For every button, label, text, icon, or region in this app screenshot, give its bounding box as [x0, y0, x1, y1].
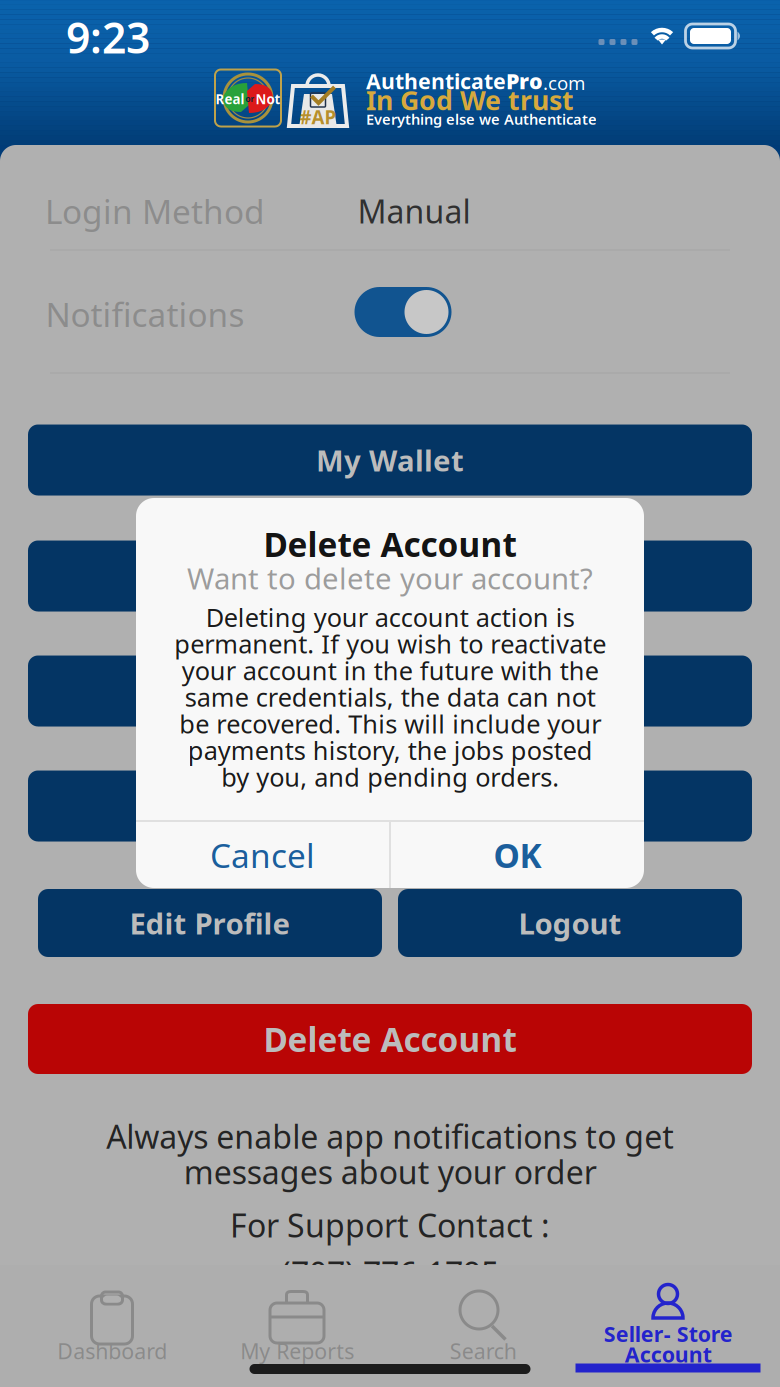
button[interactable]: Delete Account [28, 1004, 752, 1074]
button[interactable] [28, 540, 752, 611]
button[interactable]: Edit Profile [38, 889, 382, 957]
staticText: Notifications [45, 292, 244, 336]
button[interactable]: My Reports [204, 1265, 390, 1383]
staticText: 9:23 [66, 9, 150, 65]
staticText: Deleting your account action is permanen… [174, 600, 606, 794]
staticText: Always enable app notifications to get m… [106, 1115, 674, 1193]
button[interactable]: OK [391, 822, 644, 888]
staticText: Delete Account [263, 522, 516, 566]
staticText: Seller- Store Account [603, 1320, 732, 1368]
staticText: In God We trust [366, 82, 574, 118]
staticText: For Support Contact : [230, 1204, 550, 1246]
button[interactable]: Search [390, 1265, 576, 1383]
button[interactable]: My Wallet [28, 424, 752, 495]
button[interactable] [28, 770, 752, 841]
staticText: Logout [518, 903, 621, 942]
button[interactable]: Notifications [354, 287, 451, 337]
staticText: My Wallet [316, 440, 464, 479]
staticText: Pro [506, 67, 543, 95]
staticText: Everything else we Authenticate [366, 109, 597, 129]
button[interactable] [28, 655, 752, 726]
button[interactable]: Seller- Store Account [575, 1265, 761, 1383]
staticText: Login Method [45, 189, 265, 233]
button[interactable]: Dashboard [19, 1265, 205, 1383]
staticText: (707) 776-1795 [281, 1252, 499, 1294]
button[interactable]: Logout [398, 889, 742, 957]
staticText: Want to delete your account? [187, 558, 593, 597]
staticText: Edit Profile [129, 903, 290, 942]
staticText: Authenticate [366, 67, 506, 95]
staticText: Not [255, 90, 280, 108]
staticText: #AP [299, 105, 336, 129]
button[interactable]: Cancel [136, 822, 389, 888]
staticText: Dashboard [57, 1337, 167, 1365]
staticText: or [245, 94, 254, 104]
staticText: Search [449, 1337, 516, 1365]
staticText: Delete Account [263, 1017, 516, 1061]
staticText: My Reports [240, 1337, 354, 1365]
staticText: Real [215, 90, 244, 108]
staticText: OK [493, 833, 541, 877]
staticText: Cancel [210, 833, 315, 877]
staticText: .com [543, 70, 585, 95]
staticText: Manual [357, 190, 470, 232]
